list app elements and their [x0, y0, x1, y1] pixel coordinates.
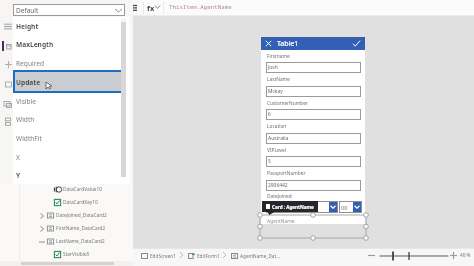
- button[interactable]: Height: [13, 17, 124, 35]
- button[interactable]: EditForm1: [188, 250, 220, 262]
- button[interactable]: [20, 249, 124, 262]
- button[interactable]: Required: [13, 54, 124, 72]
- staticText: Update: [16, 78, 41, 87]
- staticText: Josh: [268, 64, 278, 71]
- staticText: 6: [268, 111, 271, 118]
- button[interactable]: Zoom slider: [380, 250, 448, 262]
- button[interactable]: [266, 201, 338, 213]
- button[interactable]: Formula options: [155, 5, 160, 9]
- staticText: Table1: [277, 39, 299, 49]
- staticText: Location: [267, 123, 287, 130]
- button[interactable]: Update: [13, 73, 124, 91]
- staticText: AgentName: [267, 218, 295, 225]
- button[interactable]: Y: [13, 166, 124, 184]
- staticText: DateJoined: [267, 193, 292, 200]
- staticText: LastName: [267, 76, 290, 83]
- button[interactable]: Properties: [4, 23, 12, 30]
- button[interactable]: Insert: [5, 61, 12, 68]
- button[interactable]: 5: [266, 156, 361, 167]
- button[interactable]: WidthFit: [13, 129, 124, 147]
- button[interactable]: Settings: [5, 118, 11, 126]
- button[interactable]: Visible: [13, 92, 124, 110]
- staticText: Firstname: [267, 53, 290, 60]
- button[interactable]: Zoom in: [450, 252, 457, 259]
- staticText: VIPLevel: [267, 147, 286, 154]
- button[interactable]: Width: [13, 110, 124, 128]
- button[interactable]: [20, 236, 124, 249]
- button[interactable]: Default: [13, 4, 125, 16]
- button[interactable]: Open picker: [353, 202, 361, 212]
- button[interactable]: [20, 210, 124, 223]
- staticText: DataCardValue10: [63, 186, 103, 193]
- staticText: Card : AgentName: [272, 204, 314, 210]
- button[interactable]: Expand formula bar: [131, 4, 137, 11]
- other: Save: [352, 39, 361, 48]
- staticText: FirstName_DataCard2: [56, 225, 106, 232]
- staticText: AgentName_Dat...: [240, 253, 280, 259]
- button[interactable]: AgentName_Dat...: [231, 250, 280, 262]
- button[interactable]: Australia: [266, 133, 361, 144]
- staticText: Height: [16, 22, 39, 31]
- staticText: EditScreen1: [150, 253, 176, 259]
- staticText: Y: [16, 171, 21, 180]
- staticText: Width: [16, 115, 35, 124]
- staticText: Visible: [16, 97, 36, 106]
- button[interactable]: [13, 70, 124, 93]
- button[interactable]: Open picker: [329, 202, 337, 212]
- staticText: Required: [16, 59, 45, 68]
- button[interactable]: Mckay: [266, 86, 361, 97]
- staticText: MaxLength: [16, 40, 54, 49]
- button[interactable]: Data: [6, 43, 12, 50]
- staticText: CustomerNumber: [267, 100, 308, 107]
- staticText: 2906442: [268, 182, 288, 189]
- staticText: fx: [147, 3, 155, 13]
- staticText: 5: [268, 158, 271, 165]
- button[interactable]: [20, 197, 124, 210]
- staticText: 40 %: [460, 252, 471, 258]
- staticText: LastName_DataCard2: [56, 238, 105, 245]
- staticText: DateJoined_DataCard2: [56, 212, 107, 219]
- staticText: ThisItem.AgentName: [169, 3, 232, 11]
- button[interactable]: X: [13, 148, 124, 166]
- button[interactable]: Cancel: [261, 37, 365, 50]
- button[interactable]: Media: [5, 81, 12, 88]
- button[interactable]: Josh: [266, 62, 361, 73]
- staticText: StarVisible5: [63, 251, 90, 258]
- button[interactable]: EditScreen1: [141, 250, 176, 262]
- staticText: X: [16, 153, 20, 162]
- button[interactable]: 2906442: [266, 180, 361, 191]
- staticText: EditForm1: [197, 253, 220, 259]
- staticText: Default: [16, 6, 39, 15]
- button[interactable]: Zoom out: [368, 252, 375, 259]
- staticText: Mckay: [268, 88, 283, 95]
- staticText: Australia: [268, 135, 289, 142]
- button[interactable]: MaxLength: [13, 35, 124, 53]
- button[interactable]: [20, 223, 124, 236]
- button[interactable]: 00: [339, 201, 362, 213]
- button[interactable]: Screens: [4, 101, 12, 108]
- staticText: 00: [341, 204, 348, 211]
- staticText: WidthFit: [16, 134, 42, 143]
- button[interactable]: 6: [266, 109, 361, 120]
- button[interactable]: [20, 184, 124, 197]
- staticText: PassportNumber: [267, 170, 306, 177]
- staticText: DataCardKey10: [63, 199, 98, 206]
- other: Cancel: [265, 40, 272, 47]
